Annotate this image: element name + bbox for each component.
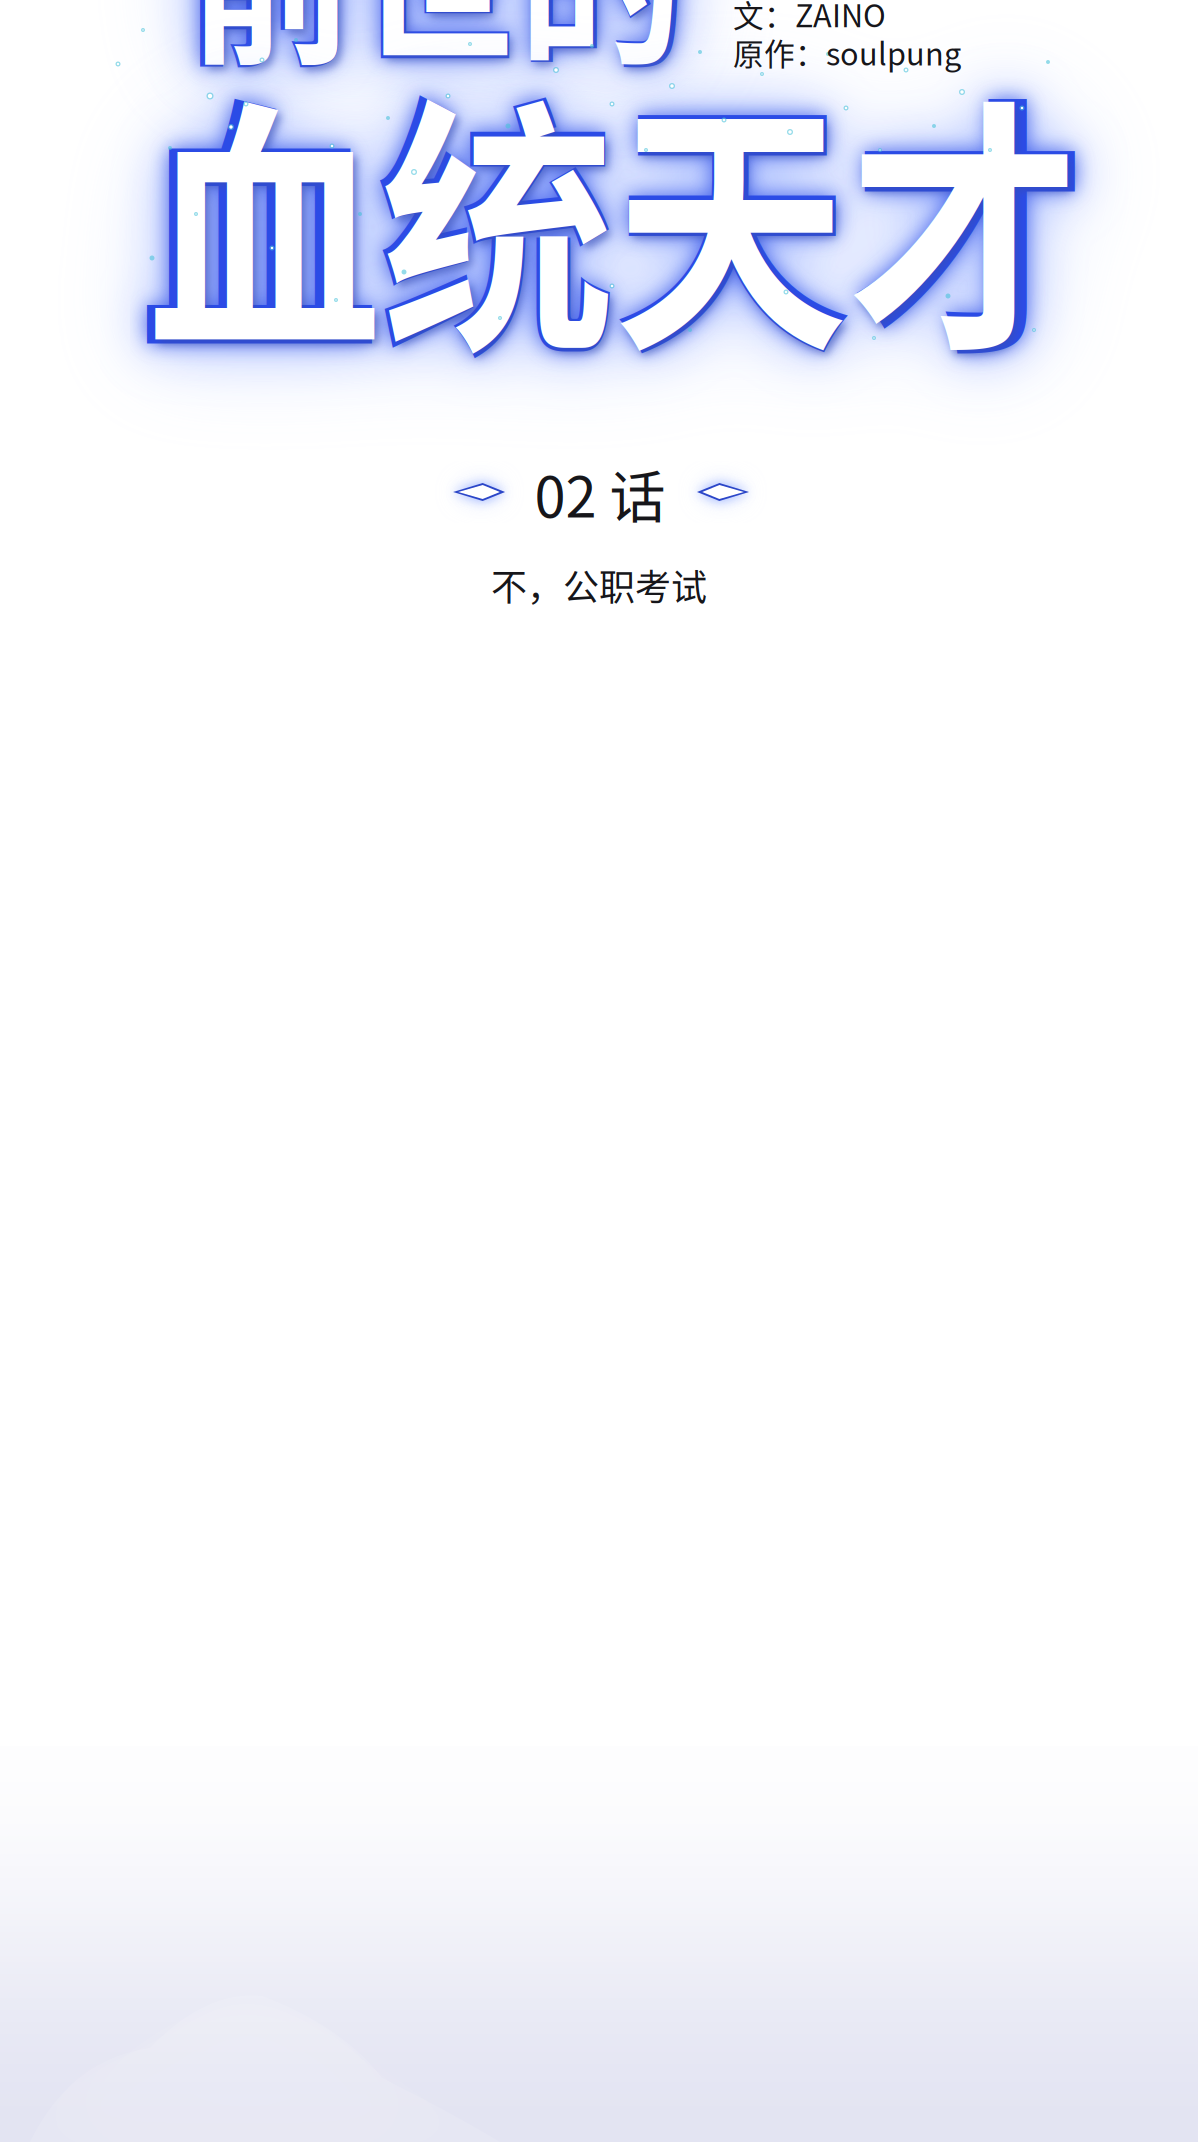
staticText: 文：ZAINO xyxy=(733,0,886,36)
staticText: 前世的 xyxy=(188,0,683,86)
staticText: 原作：soulpung xyxy=(733,30,961,74)
staticText: 血统天才 xyxy=(148,43,1080,381)
staticText: 02 话 xyxy=(534,452,665,534)
staticText: 不，公职考试 xyxy=(491,559,707,611)
button[interactable]: 第 02 话 不，公职考试 — 血统天才 xyxy=(0,0,1198,2142)
staticText: 前世的 xyxy=(188,0,683,86)
staticText: 血统天才 xyxy=(148,43,1080,381)
